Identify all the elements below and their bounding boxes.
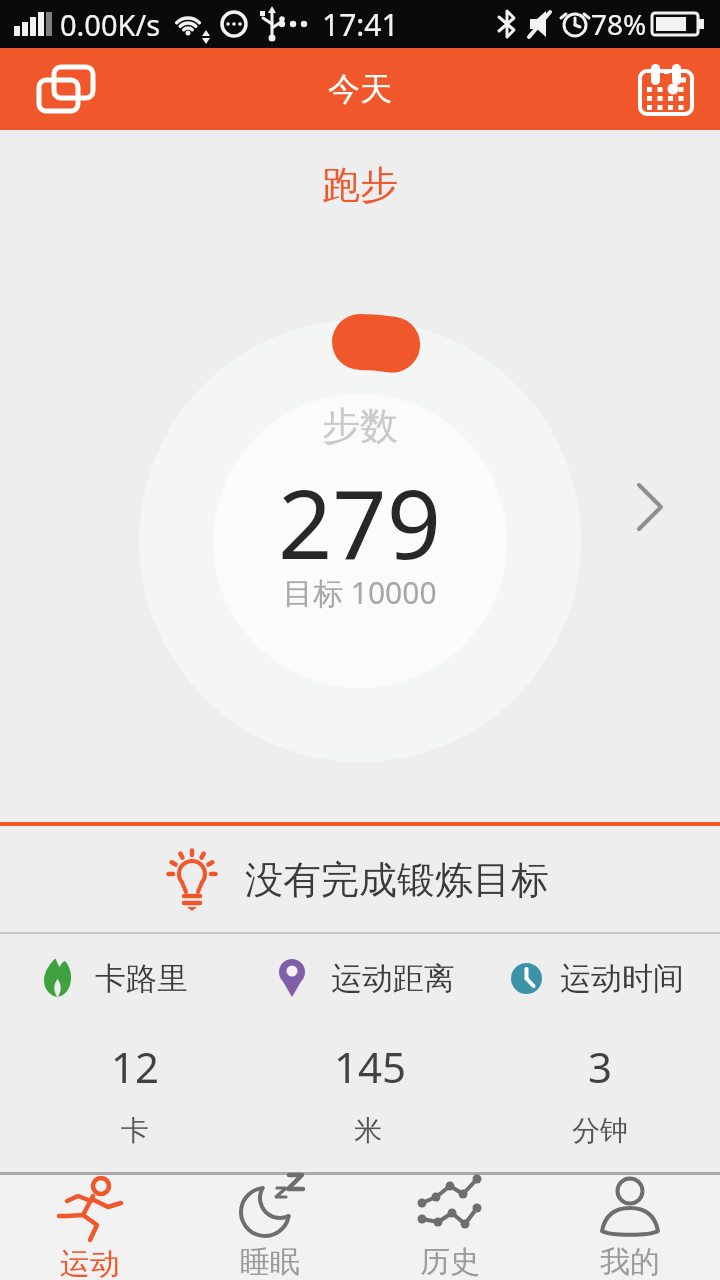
button[interactable] [140,321,580,761]
staticText: 睡眠 [240,1243,300,1280]
staticText: 78% [591,5,647,43]
staticText: 今天 [328,69,392,109]
button[interactable]: 运动 [0,1175,180,1280]
staticText: 17:41 [322,4,399,45]
staticText: 279 [278,457,442,586]
staticText: 跑步 [322,161,398,209]
staticText: 米 [354,1113,382,1148]
staticText: 3 [588,1038,613,1095]
staticText: 运动时间 [560,959,684,998]
button[interactable]: 我的 [540,1175,720,1280]
staticText: 我的 [600,1243,660,1280]
button[interactable]: 没有完成锻炼目标 [0,828,720,932]
staticText: 运动 [60,1245,120,1280]
staticText: 步数 [322,402,398,450]
button[interactable] [24,53,108,125]
staticText: 145 [334,1038,407,1095]
staticText: 运动距离 [331,959,455,998]
staticText: 没有完成锻炼目标 [245,856,549,904]
staticText: 分钟 [572,1113,628,1148]
button[interactable]: 历史 [360,1175,540,1280]
staticText: 卡 [121,1113,149,1148]
staticText: 12 [111,1038,160,1095]
staticText: 卡路里 [95,959,188,998]
button[interactable]: 睡眠 [180,1175,360,1280]
button[interactable] [624,53,708,125]
staticText: 0.00K/s [60,5,161,44]
staticText: 历史 [420,1243,480,1280]
staticText: 目标 10000 [283,572,437,613]
